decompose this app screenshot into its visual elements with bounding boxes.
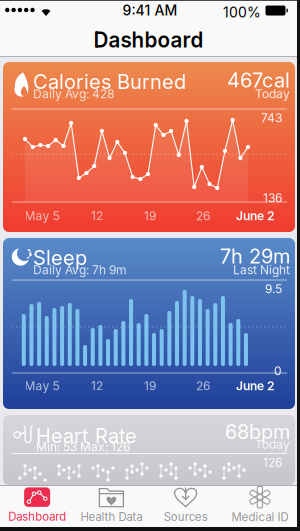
staticText: Daily Avg: 7h 9m xyxy=(33,262,127,277)
staticText: 26 xyxy=(196,209,210,223)
staticText: Last Night xyxy=(233,262,290,277)
staticText: 19 xyxy=(144,379,156,393)
staticText: Min: 53 Max: 126 xyxy=(36,439,130,454)
staticText: Dashboard xyxy=(8,510,66,524)
staticText: 100% xyxy=(223,4,261,21)
staticText: 126 xyxy=(263,455,282,469)
button[interactable]: Sleep xyxy=(3,238,295,409)
button[interactable]: Heart Rate xyxy=(3,415,295,485)
staticText: May 5 xyxy=(24,379,59,393)
staticText: Dashboard xyxy=(93,27,203,52)
staticText: Today xyxy=(255,86,290,101)
button[interactable]: Health Data xyxy=(74,485,148,526)
staticText: May 5 xyxy=(24,209,59,223)
staticText: 9.5 xyxy=(265,281,282,296)
staticText: 743 xyxy=(261,110,282,125)
staticText: 136 xyxy=(263,190,282,205)
staticText: 467cal xyxy=(227,68,290,92)
staticText: Sources xyxy=(164,510,208,524)
staticText: 0 xyxy=(274,363,282,378)
staticText: Health Data xyxy=(80,510,142,524)
button[interactable]: Sources xyxy=(148,485,223,526)
button[interactable]: Medical ID xyxy=(223,485,297,526)
staticText: 26 xyxy=(196,379,210,393)
staticText: Sleep xyxy=(33,245,87,270)
staticText: 9:41 AM xyxy=(122,2,177,19)
staticText: 19 xyxy=(144,209,156,223)
staticText: Heart Rate xyxy=(36,423,137,448)
staticText: June 2 xyxy=(236,209,274,223)
staticText: Calories Burned xyxy=(33,69,186,94)
staticText: 7h 29m xyxy=(220,244,290,268)
staticText: 12 xyxy=(91,209,103,223)
button[interactable]: Calories Burned xyxy=(3,62,295,232)
staticText: Today xyxy=(255,437,290,451)
staticText: 68bpm xyxy=(225,419,290,444)
staticText: Daily Avg: 428 xyxy=(33,86,114,101)
button[interactable]: Dashboard xyxy=(0,485,74,526)
staticText: 12 xyxy=(91,379,103,393)
staticText: Medical ID xyxy=(231,510,288,524)
staticText: June 2 xyxy=(236,379,274,393)
